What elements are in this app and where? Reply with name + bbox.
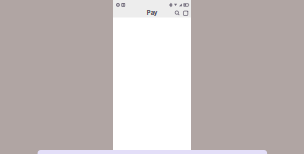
button[interactable]: Account xyxy=(182,9,190,17)
staticText: Pay xyxy=(147,9,158,16)
button[interactable]: Notification banner xyxy=(38,150,267,154)
button[interactable]: Search xyxy=(173,9,181,17)
